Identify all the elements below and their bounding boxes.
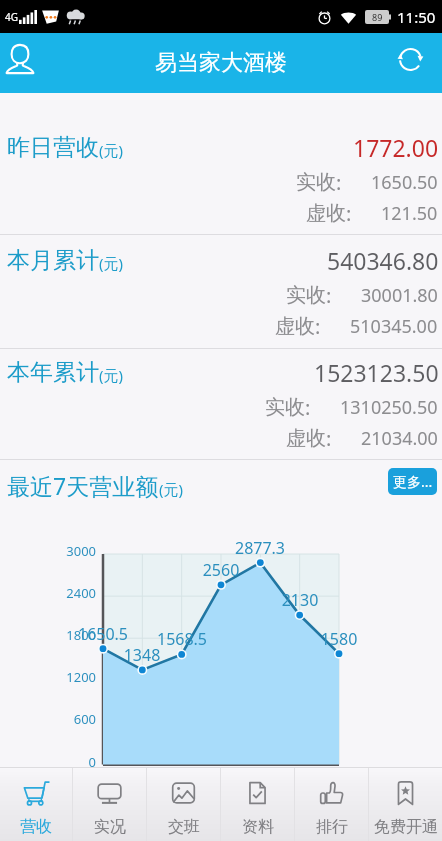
staticText: 600	[0, 710, 96, 728]
staticText: 1310250.50	[340, 395, 438, 420]
button[interactable]: 实况	[73, 768, 146, 841]
staticText: (元)	[99, 365, 124, 385]
staticText: 交班	[168, 817, 200, 837]
staticText: (元)	[99, 253, 124, 273]
staticText: :	[305, 394, 311, 421]
button[interactable]: 更多...	[388, 468, 437, 495]
staticText: 更多...	[393, 472, 433, 491]
staticText: 1800	[0, 626, 96, 644]
staticText: 121.50	[381, 201, 438, 226]
staticText: 2130	[260, 589, 340, 611]
staticText: 1200	[0, 668, 96, 686]
button[interactable]: 交班	[147, 768, 220, 841]
staticText: 1523123.50	[314, 357, 439, 388]
staticText: 1772.00	[353, 132, 439, 163]
staticText: 30001.80	[361, 283, 438, 308]
staticText: 2560	[181, 559, 261, 581]
staticText: 昨日营收	[7, 133, 99, 162]
staticText: :	[336, 169, 342, 196]
staticText: 11:50	[397, 7, 436, 27]
staticText: (元)	[159, 479, 184, 499]
staticText: 实收	[286, 283, 326, 308]
button[interactable]: 排行	[295, 768, 368, 841]
staticText: 1568.5	[142, 628, 222, 650]
staticText: 1650.5	[63, 623, 143, 645]
staticText: 1650.50	[371, 170, 438, 195]
staticText: :	[326, 282, 332, 309]
staticText: :	[346, 200, 352, 227]
staticText: 虚收	[306, 201, 346, 226]
staticText: 89	[372, 11, 383, 23]
staticText: 实况	[94, 817, 126, 837]
button[interactable]: 免费开通	[369, 768, 442, 841]
staticText: 虚收	[286, 426, 326, 451]
staticText: 易当家大酒楼	[155, 49, 287, 77]
button[interactable]: 资料	[221, 768, 294, 841]
staticText: 免费开通	[374, 817, 438, 837]
staticText: 540346.80	[327, 245, 439, 276]
staticText: 营收	[20, 817, 52, 837]
button[interactable]: Refresh	[390, 33, 442, 93]
staticText: 2877.3	[220, 537, 300, 559]
staticText: 排行	[316, 817, 348, 837]
staticText: (元)	[99, 140, 124, 160]
button[interactable]: Account	[0, 33, 50, 93]
staticText: 实收	[296, 170, 336, 195]
staticText: 3000	[0, 542, 96, 560]
staticText: 1348	[102, 644, 182, 666]
staticText: 510345.00	[350, 314, 438, 339]
staticText: 最近7天营业额	[7, 470, 159, 501]
staticText: :	[315, 313, 321, 340]
staticText: 虚收	[275, 314, 315, 339]
button[interactable]: 营收	[0, 768, 72, 841]
staticText: 1580	[299, 628, 379, 650]
staticText: 2400	[0, 584, 96, 602]
staticText: 本年累计	[7, 358, 99, 387]
staticText: 资料	[242, 817, 274, 837]
staticText: 4G	[5, 10, 18, 24]
staticText: 0	[0, 753, 96, 771]
staticText: 实收	[265, 395, 305, 420]
staticText: 21034.00	[361, 426, 438, 451]
staticText: :	[326, 425, 332, 452]
staticText: 本月累计	[7, 246, 99, 275]
